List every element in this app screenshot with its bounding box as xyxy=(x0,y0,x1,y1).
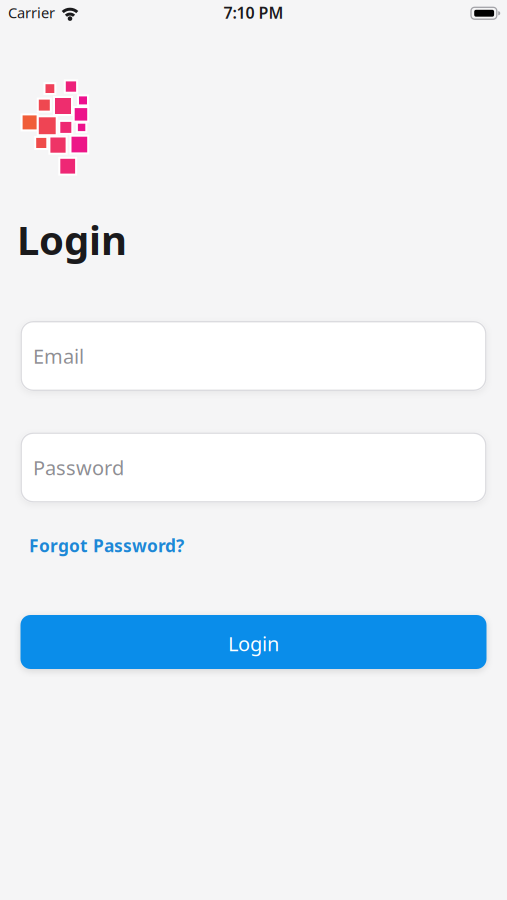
staticText: Login xyxy=(228,630,279,657)
staticText: Carrier xyxy=(8,3,55,22)
button[interactable]: Email xyxy=(20,321,486,391)
staticText: 7:10 PM xyxy=(223,2,283,23)
button[interactable]: Password xyxy=(20,432,486,502)
staticText: Email xyxy=(33,343,84,369)
staticText: Password xyxy=(33,454,124,481)
staticText: Login xyxy=(17,213,127,266)
button[interactable]: Forgot Password? xyxy=(29,534,184,557)
button[interactable]: Login xyxy=(20,615,486,669)
staticText: Forgot Password? xyxy=(29,534,184,557)
